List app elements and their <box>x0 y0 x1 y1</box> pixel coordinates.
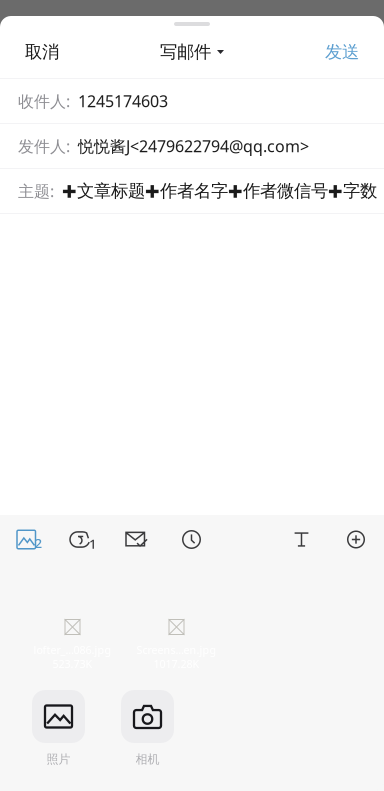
button[interactable]: lofter_…086.jpg <box>26 581 119 673</box>
button[interactable]: 发送 <box>307 33 384 71</box>
staticText: 照片 <box>46 752 70 767</box>
button[interactable]: 相机 <box>103 690 192 767</box>
image <box>168 619 184 635</box>
staticText: 发送 <box>325 41 359 63</box>
button[interactable]: Text format <box>294 517 347 561</box>
button[interactable]: 发件人: <box>0 124 384 169</box>
button[interactable]: Mail <box>126 517 182 561</box>
button[interactable]: 照片 <box>14 690 103 767</box>
button[interactable]: 主题: <box>0 169 384 214</box>
button[interactable]: 取消 <box>0 33 77 71</box>
staticText: 悦悦酱J<2479622794@qq.com> <box>78 135 309 157</box>
staticText: 主题: <box>18 180 54 202</box>
staticText: 相机 <box>135 752 159 767</box>
image <box>64 619 80 635</box>
staticText: 1245174603 <box>78 90 168 112</box>
button[interactable]: More options <box>347 517 365 561</box>
button[interactable]: Schedule send <box>182 517 206 561</box>
staticText: 写邮件 <box>160 41 211 63</box>
staticText: 取消 <box>25 41 59 63</box>
staticText: ✚文章标题✚作者名字✚作者微信号✚字数 <box>62 180 377 202</box>
staticText: 收件人: <box>18 90 70 112</box>
button[interactable]: Photos <box>17 517 70 561</box>
button[interactable]: Screens…en.jpg <box>130 581 223 673</box>
staticText: 发件人: <box>18 135 70 157</box>
staticText: 2 <box>34 534 42 552</box>
button[interactable]: Attachments <box>70 517 126 561</box>
staticText: 1 <box>89 535 97 552</box>
button[interactable]: 写邮件 <box>160 33 224 71</box>
button[interactable]: 收件人: <box>0 79 384 124</box>
